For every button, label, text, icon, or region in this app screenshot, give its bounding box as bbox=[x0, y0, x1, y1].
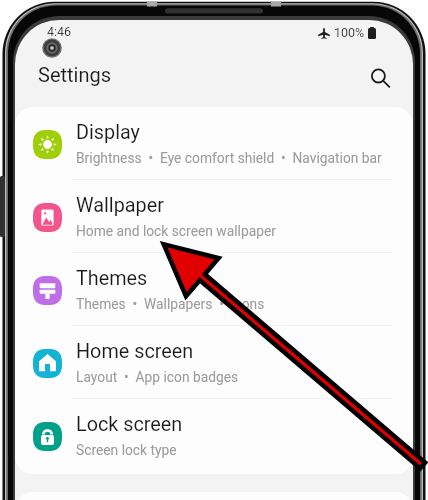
button[interactable]: Display bbox=[15, 107, 413, 180]
button[interactable]: Themes bbox=[15, 253, 413, 326]
staticText: Lock screen bbox=[76, 413, 183, 436]
button[interactable]: Home screen bbox=[15, 326, 413, 399]
staticText: Home and lock screen wallpaper bbox=[76, 223, 276, 239]
staticText: Home screen bbox=[76, 340, 194, 363]
staticText: 100% bbox=[334, 25, 365, 40]
staticText: Themes bbox=[76, 267, 148, 290]
staticText: Screen lock type bbox=[76, 442, 177, 458]
staticText: Wallpaper bbox=[76, 194, 164, 217]
button[interactable]: Wallpaper bbox=[15, 180, 413, 253]
staticText: 4:46 bbox=[47, 24, 72, 39]
staticText: Brightness • Eye comfort shield • Naviga… bbox=[76, 150, 382, 166]
button[interactable]: Lock screen bbox=[15, 399, 413, 472]
button[interactable]: Search bbox=[362, 60, 398, 96]
staticText: Display bbox=[76, 121, 140, 144]
staticText: Layout • App icon badges bbox=[76, 369, 239, 385]
staticText: Settings bbox=[38, 63, 112, 86]
staticText: Themes • Wallpapers • Icons bbox=[76, 296, 265, 312]
